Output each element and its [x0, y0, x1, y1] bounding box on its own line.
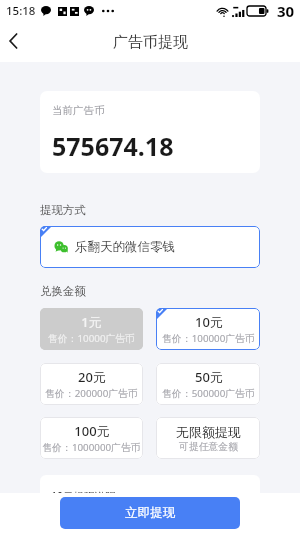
staticText: 可提任意金额: [179, 441, 238, 453]
button[interactable]: Back: [0, 24, 26, 58]
staticText: 10元: [195, 313, 223, 331]
staticText: 广告币提现: [113, 33, 188, 52]
staticText: 兑换金额: [40, 284, 86, 298]
staticText: 10元提现说明: [51, 489, 116, 503]
staticText: 1元: [81, 313, 102, 331]
staticText: 50元: [195, 368, 223, 386]
staticText: 售价：100000广告币: [162, 332, 255, 345]
staticText: 售价：200000广告币: [45, 387, 138, 400]
staticText: 售价：500000广告币: [162, 387, 255, 400]
staticText: 售价：10000广告币: [48, 332, 135, 345]
staticText: 提现方式: [40, 203, 86, 217]
staticText: 20元: [78, 368, 106, 386]
staticText: 15:18: [6, 3, 36, 19]
button[interactable]: 立即提现: [60, 497, 240, 529]
staticText: 当前广告币: [52, 104, 105, 117]
staticText: 售价：1000000广告币: [42, 441, 141, 454]
staticText: 100元: [74, 422, 110, 440]
button[interactable]: 50元: [156, 363, 260, 405]
staticText: 30: [277, 1, 295, 21]
staticText: 乐翻天的微信零钱: [75, 239, 175, 255]
staticText: 575674.18: [52, 129, 174, 163]
staticText: 立即提现: [125, 505, 176, 521]
button[interactable]: 20元: [40, 363, 143, 405]
staticText: 无限额提现: [176, 424, 241, 440]
button[interactable]: 1元: [40, 308, 143, 350]
button[interactable]: 100元: [40, 417, 143, 459]
button[interactable]: 10元: [156, 308, 260, 350]
button[interactable]: 无限额提现: [156, 417, 260, 459]
button[interactable]: 乐翻天的微信零钱: [40, 226, 260, 268]
